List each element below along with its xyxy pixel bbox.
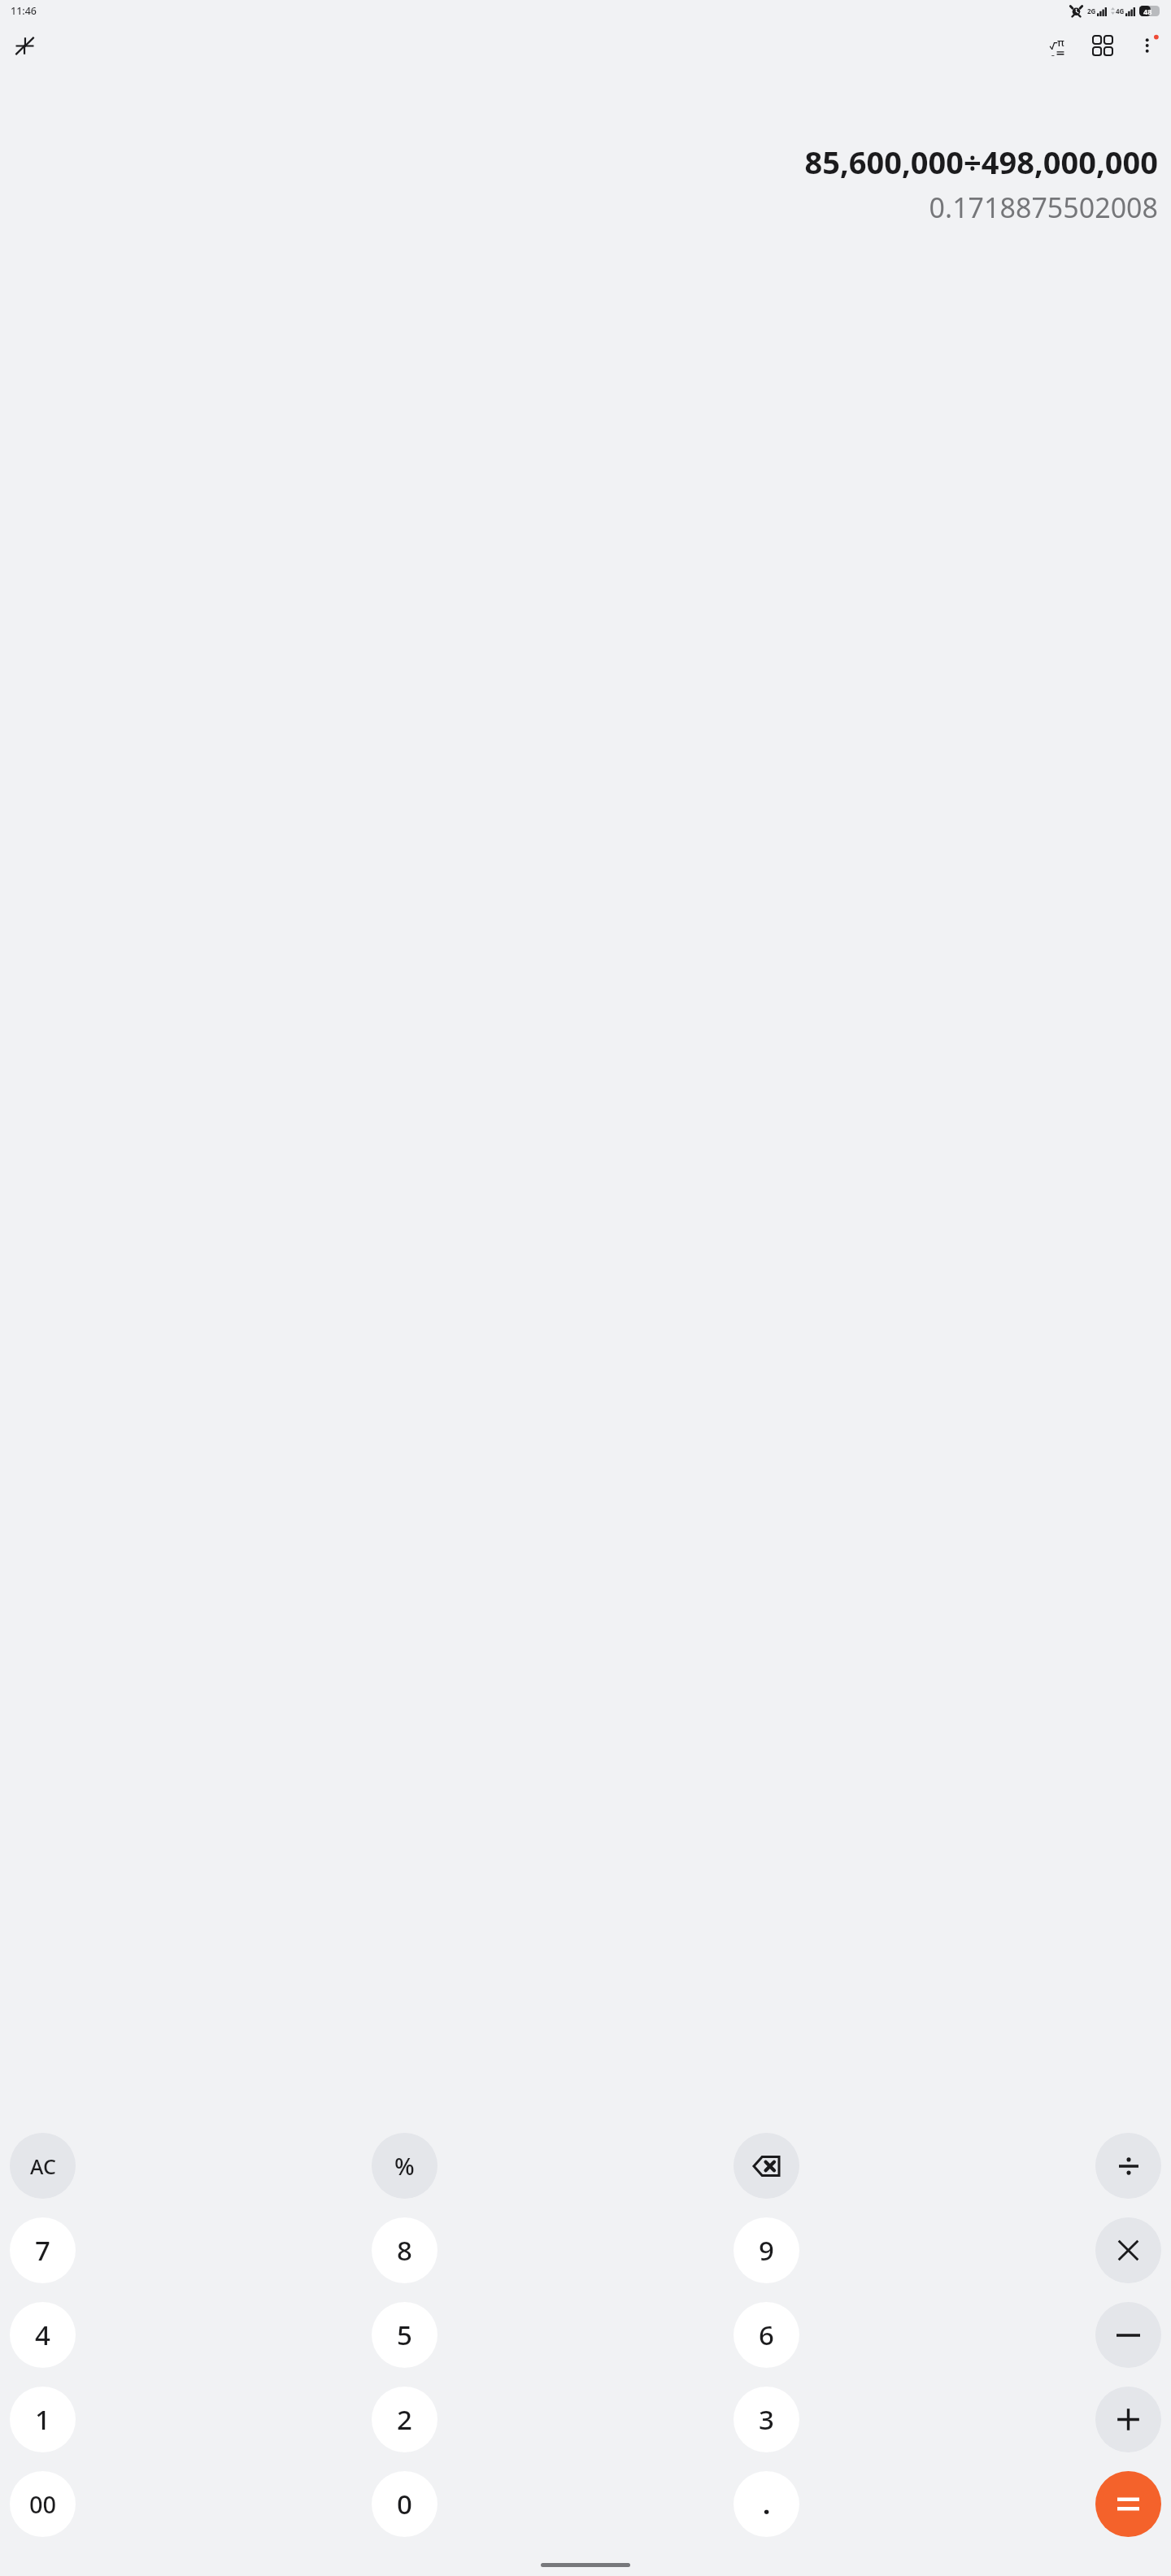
button[interactable]: . — [734, 2471, 799, 2537]
staticText: 5 — [397, 2317, 412, 2353]
staticText: 7 — [35, 2232, 50, 2269]
button[interactable]: 1 — [10, 2387, 76, 2452]
button[interactable]: 00 — [10, 2471, 76, 2537]
staticText: 4G — [1116, 7, 1125, 15]
staticText: 6 — [759, 2317, 774, 2353]
button[interactable]: 4 — [10, 2302, 76, 2368]
button[interactable]: Backspace — [734, 2133, 799, 2199]
button[interactable]: % — [372, 2133, 437, 2199]
button[interactable]: Collapse — [5, 26, 44, 65]
button[interactable]: 8 — [372, 2217, 437, 2283]
staticText: 2 — [397, 2401, 412, 2438]
staticText: 4 — [35, 2317, 50, 2353]
staticText: 85,600,000÷498,000,000 — [804, 141, 1158, 183]
staticText: 0.1718875502008 — [929, 189, 1158, 226]
button[interactable]: Plus — [1095, 2387, 1161, 2452]
staticText: . — [763, 2486, 771, 2522]
button[interactable]: AC — [10, 2133, 76, 2199]
staticText: 11:46 — [11, 4, 37, 18]
button[interactable]: 9 — [734, 2217, 799, 2283]
staticText: % — [394, 2150, 415, 2182]
button[interactable]: 7 — [10, 2217, 76, 2283]
staticText: 00 — [29, 2488, 57, 2520]
button[interactable]: 5 — [372, 2302, 437, 2368]
button[interactable]: 2 — [372, 2387, 437, 2452]
button[interactable]: Equals — [1095, 2471, 1161, 2537]
staticText: 0 — [397, 2486, 412, 2522]
button[interactable]: 3 — [734, 2387, 799, 2452]
staticText: 3 — [759, 2401, 774, 2438]
staticText: AC — [30, 2152, 56, 2180]
staticText: π — [1057, 35, 1064, 50]
staticText: 2G — [1087, 7, 1096, 15]
button[interactable]: More options — [1129, 26, 1168, 65]
button[interactable]: 6 — [734, 2302, 799, 2368]
button[interactable]: Multiply — [1095, 2217, 1161, 2283]
button[interactable]: Scientific calculator — [1038, 26, 1077, 65]
staticText: 1 — [35, 2401, 50, 2438]
staticText: 48 — [1143, 7, 1152, 16]
button[interactable]: Minus — [1095, 2302, 1161, 2368]
button[interactable]: Converters — [1083, 26, 1122, 65]
button[interactable]: Divide — [1095, 2133, 1161, 2199]
staticText: 8 — [397, 2232, 412, 2269]
staticText: 9 — [759, 2232, 774, 2269]
button[interactable]: 0 — [372, 2471, 437, 2537]
